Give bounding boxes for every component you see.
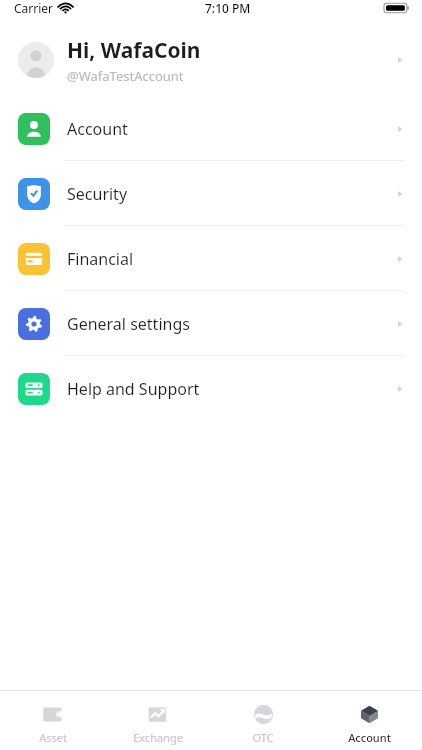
button[interactable]: Account: [316, 696, 422, 745]
staticText: @WafaTestAccount: [67, 67, 184, 85]
button[interactable]: Account: [0, 96, 422, 161]
button[interactable]: General settings: [0, 291, 422, 356]
button[interactable]: Security: [0, 161, 422, 226]
button[interactable]: Financial: [0, 226, 422, 291]
staticText: Asset: [39, 730, 67, 745]
button[interactable]: Exchange: [105, 696, 210, 745]
staticText: Carrier: [14, 0, 54, 16]
staticText: Financial: [67, 248, 134, 270]
button[interactable]: OTC: [210, 696, 316, 745]
button[interactable]: Help and Support: [0, 356, 422, 421]
staticText: OTC: [252, 730, 274, 745]
staticText: Security: [67, 183, 128, 205]
button[interactable]: Hi, WafaCoin: [0, 24, 422, 96]
staticText: Hi, WafaCoin: [67, 36, 201, 65]
staticText: Account: [67, 118, 128, 140]
staticText: Account: [348, 730, 391, 745]
staticText: Help and Support: [67, 378, 200, 400]
button[interactable]: Asset: [0, 696, 105, 745]
staticText: General settings: [67, 313, 190, 335]
staticText: 7:10 PM: [205, 0, 251, 16]
staticText: Exchange: [133, 730, 183, 745]
